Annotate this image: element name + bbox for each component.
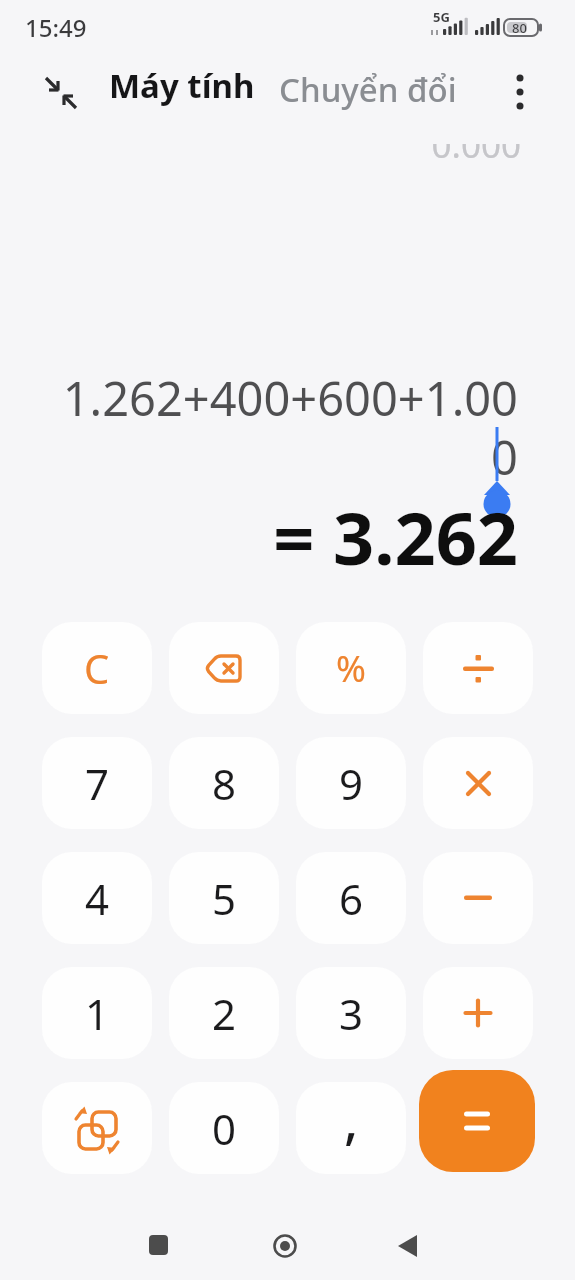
button[interactable]: 5	[169, 852, 279, 944]
button[interactable]: 7	[42, 737, 152, 829]
staticText: 80	[512, 19, 527, 37]
button[interactable]	[423, 967, 533, 1059]
staticText: 1	[85, 985, 110, 1042]
button[interactable]: 6	[296, 852, 406, 944]
staticText: 0	[212, 1100, 237, 1157]
staticText: 6	[339, 870, 364, 927]
button[interactable]: 4	[42, 852, 152, 944]
staticText: = 3.262	[0, 488, 518, 586]
button[interactable]: ,	[296, 1082, 406, 1174]
staticText: 2	[212, 985, 237, 1042]
staticText: 0.000	[0, 121, 521, 169]
staticText: ,	[344, 1083, 359, 1154]
staticText: %	[336, 644, 366, 693]
button[interactable]	[257, 1226, 313, 1266]
button[interactable]: C	[42, 622, 152, 714]
staticText: C	[84, 641, 110, 695]
staticText: 1.262+400+600+1.00	[0, 366, 518, 430]
button[interactable]: 1	[42, 967, 152, 1059]
button[interactable]: 9	[296, 737, 406, 829]
button[interactable]	[423, 852, 533, 944]
button[interactable]	[36, 68, 86, 118]
staticText: 7	[85, 755, 110, 812]
button[interactable]: Chuyển đổi	[279, 67, 457, 112]
button[interactable]	[42, 1082, 152, 1174]
button[interactable]: 0	[169, 1082, 279, 1174]
button[interactable]	[419, 1070, 535, 1172]
staticText: 8	[212, 755, 237, 812]
staticText: 0	[0, 425, 518, 489]
button[interactable]	[423, 737, 533, 829]
staticText: 9	[339, 755, 364, 812]
button[interactable]: Máy tính	[109, 63, 255, 108]
button[interactable]	[500, 72, 540, 112]
staticText: 4	[85, 870, 110, 927]
staticText: 5G	[433, 8, 450, 26]
staticText: 3	[339, 985, 364, 1042]
button[interactable]: %	[296, 622, 406, 714]
button[interactable]	[380, 1226, 436, 1266]
button[interactable]	[169, 622, 279, 714]
button[interactable]	[130, 1226, 186, 1266]
staticText: 15:49	[25, 11, 87, 44]
button[interactable]: 2	[169, 967, 279, 1059]
staticText: 5	[212, 870, 237, 927]
button[interactable]: 8	[169, 737, 279, 829]
button[interactable]: 3	[296, 967, 406, 1059]
button[interactable]	[423, 622, 533, 714]
